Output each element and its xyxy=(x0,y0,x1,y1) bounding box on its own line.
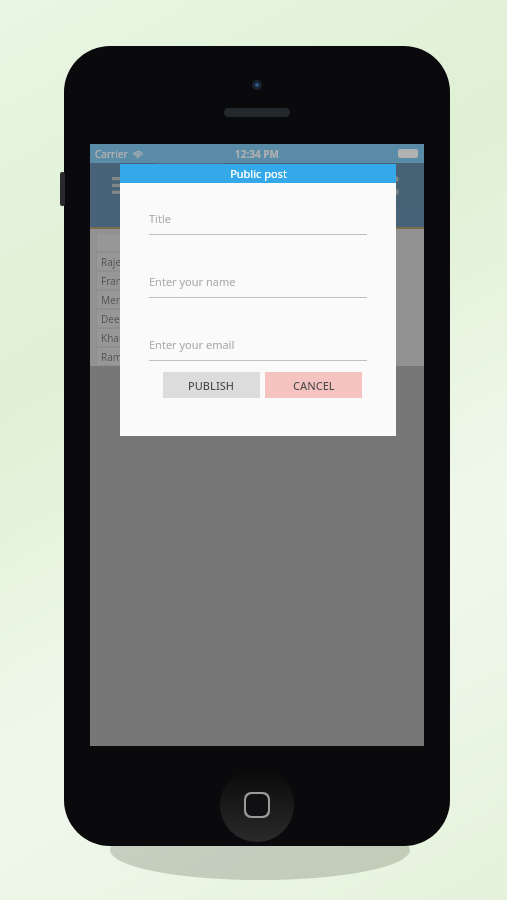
button[interactable]: PUBLISH xyxy=(163,372,260,398)
staticText: Merlin xyxy=(101,293,132,307)
button[interactable]: Enter your email xyxy=(149,337,367,361)
button[interactable]: Menu xyxy=(90,163,156,208)
staticText: 12:34 PM xyxy=(235,147,279,161)
staticText: Carrier xyxy=(95,147,128,161)
button[interactable]: Khan xyxy=(97,329,245,346)
staticText: Rajesh xyxy=(101,255,133,269)
button[interactable]: Frank xyxy=(97,272,245,289)
button[interactable]: Merlin xyxy=(97,291,245,308)
staticText: Khan xyxy=(101,331,126,345)
staticText: Ram xyxy=(101,350,123,364)
button[interactable]: CANCEL xyxy=(265,372,362,398)
button[interactable]: Back xyxy=(156,163,223,208)
button[interactable]: Home xyxy=(220,768,294,842)
staticText: Deepak xyxy=(101,312,137,326)
staticText: PUBLISH xyxy=(188,378,235,393)
button[interactable]: Deepak xyxy=(97,310,245,327)
button[interactable]: Ram xyxy=(97,348,245,365)
staticText: Public post xyxy=(230,166,287,181)
button[interactable]: Enter your name xyxy=(149,274,367,298)
button[interactable]: Name xyxy=(97,234,245,251)
button[interactable]: Upload xyxy=(290,163,357,208)
staticText: Frank xyxy=(101,274,128,288)
staticText: Enter your email xyxy=(149,337,235,352)
button[interactable]: New note xyxy=(223,163,290,208)
staticText: CANCEL xyxy=(293,378,335,393)
button[interactable]: Title xyxy=(149,211,367,235)
staticText: Title xyxy=(149,211,171,226)
staticText: Enter your name xyxy=(149,274,236,289)
button[interactable]: Share xyxy=(357,163,424,208)
button[interactable]: Rajesh xyxy=(97,253,245,270)
